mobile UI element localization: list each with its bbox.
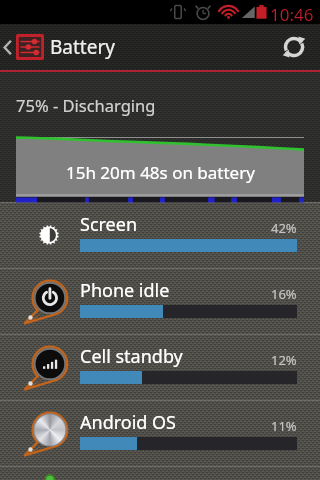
staticText: 75% - Discharging	[16, 94, 156, 116]
staticText: 10:46	[270, 3, 314, 26]
staticText: 15h 20m 48s on battery	[66, 161, 255, 184]
button[interactable]: Android OS	[0, 401, 320, 466]
staticText: Android System	[80, 476, 214, 480]
staticText: 42%	[271, 219, 297, 237]
staticText: Battery	[50, 34, 115, 60]
button[interactable]: Android System	[0, 467, 320, 480]
staticText: 11%	[271, 417, 297, 435]
staticText: Phone idle	[80, 278, 170, 303]
button[interactable]: Screen	[0, 203, 320, 268]
button[interactable]: Phone idle	[0, 269, 320, 334]
button[interactable]: Cell standby	[0, 335, 320, 400]
staticText: Screen	[80, 212, 138, 237]
staticText: Android OS	[80, 410, 176, 435]
button[interactable]: Refresh	[268, 24, 320, 70]
staticText: 16%	[271, 285, 297, 303]
staticText: 9%	[278, 476, 297, 480]
staticText: 12%	[271, 351, 297, 369]
button[interactable]: Navigate up to Settings	[3, 24, 44, 70]
staticText: Cell standby	[80, 344, 183, 369]
